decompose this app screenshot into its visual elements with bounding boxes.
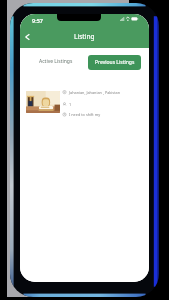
button[interactable]: Jahanian, Jahanian , Pakistan (23, 84, 145, 125)
button[interactable]: Active Listings (23, 54, 89, 69)
staticText: 1 (69, 102, 72, 107)
staticText: 9:57 (32, 17, 43, 24)
button[interactable]: Back (22, 30, 33, 44)
staticText: Active Listings (39, 58, 73, 65)
button[interactable]: Previous Listings (88, 55, 141, 70)
staticText: Previous Listings (95, 59, 135, 66)
staticText: I need to shift my (69, 112, 101, 117)
staticText: Jahanian, Jahanian , Pakistan (69, 90, 120, 95)
staticText: Listing (74, 32, 95, 41)
